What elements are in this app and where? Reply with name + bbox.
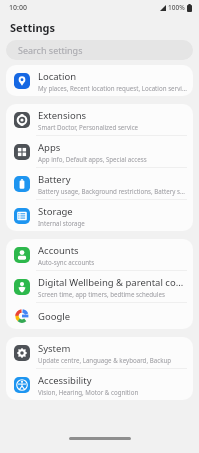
staticText: Auto-sync accounts: [38, 258, 95, 266]
button[interactable]: Battery: [6, 168, 193, 199]
staticText: System: [38, 342, 71, 355]
staticText: Vision, Hearing, Motor & cognition: [38, 388, 139, 396]
button[interactable]: Accounts: [6, 239, 193, 270]
button[interactable]: Google: [6, 303, 193, 329]
other: Battery: [14, 176, 30, 192]
staticText: Accounts: [38, 244, 79, 257]
staticText: 10:00: [9, 3, 27, 13]
staticText: Google: [38, 310, 71, 323]
other: Digital Wellbeing & parental controls: [14, 279, 30, 295]
staticText: Update centre, Language & keyboard, Back…: [38, 356, 172, 364]
staticText: Extensions: [38, 109, 87, 122]
staticText: My places, Recent location request, Loca…: [38, 84, 187, 92]
button[interactable]: Location: [6, 65, 193, 96]
staticText: Location: [38, 70, 77, 83]
other: Extensions: [14, 112, 30, 128]
staticText: Battery: [38, 173, 71, 186]
other: Location: [14, 73, 30, 89]
staticText: Battery usage, Background restrictions, …: [38, 187, 187, 195]
staticText: App info, Default apps, Special access: [38, 155, 147, 163]
staticText: Apps: [38, 141, 61, 154]
button[interactable]: Search settings: [6, 40, 193, 60]
button[interactable]: Digital Wellbeing & parental controls: [6, 271, 193, 302]
staticText: Storage: [38, 205, 73, 218]
button[interactable]: Accessibility: [6, 369, 193, 400]
other: Google: [14, 308, 30, 324]
button[interactable]: System: [6, 337, 193, 368]
other: Storage: [14, 208, 30, 224]
other: System: [14, 345, 30, 361]
staticText: Smart Doctor, Personalized service: [38, 123, 139, 131]
staticText: Search settings: [18, 44, 83, 56]
staticText: 100%: [168, 3, 185, 12]
staticText: Settings: [10, 20, 56, 35]
staticText: Accessibility: [38, 374, 92, 387]
other: Apps: [14, 144, 30, 160]
staticText: Digital Wellbeing & parental controls: [38, 276, 187, 289]
button[interactable]: Storage: [6, 200, 193, 231]
staticText: Screen time, app timers, bedtime schedul…: [38, 290, 165, 298]
other: Accounts: [14, 247, 30, 263]
button[interactable]: Extensions: [6, 104, 193, 135]
staticText: Internal storage: [38, 219, 85, 227]
other: Accessibility: [14, 377, 30, 393]
button[interactable]: Apps: [6, 136, 193, 167]
